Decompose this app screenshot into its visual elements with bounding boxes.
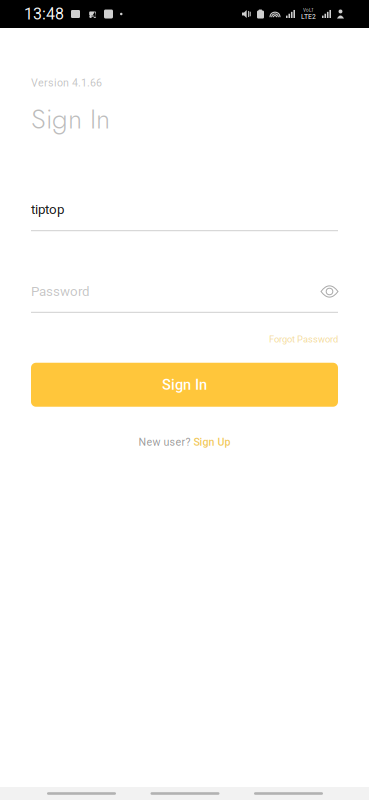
button[interactable]: Show password xyxy=(321,284,338,299)
button[interactable]: Forgot Password xyxy=(269,334,338,345)
staticText: Sign In xyxy=(162,376,207,393)
staticText: 13:48 xyxy=(24,5,64,23)
staticText: New user? xyxy=(138,436,193,448)
button[interactable]: Sign Up xyxy=(193,436,230,448)
staticText: Password xyxy=(31,284,90,299)
staticText: Version 4.1.66 xyxy=(31,77,102,89)
button[interactable]: Sign In xyxy=(31,363,338,407)
staticText: tiptop xyxy=(31,202,64,217)
staticText: Sign Up xyxy=(193,436,230,448)
staticText: Sign In xyxy=(31,99,110,139)
staticText: LTE2 xyxy=(301,13,316,21)
staticText: Forgot Password xyxy=(269,334,338,345)
staticText: VoLT xyxy=(303,7,314,13)
